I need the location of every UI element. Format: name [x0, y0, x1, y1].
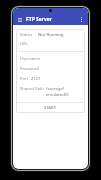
button[interactable]: More options — [78, 16, 85, 23]
staticText: /storage/emulated/0 — [46, 86, 81, 98]
staticText: Shared Path — [20, 86, 44, 92]
staticText: Not Running — [38, 32, 64, 38]
staticText: Password — [20, 66, 39, 72]
staticText: Username — [20, 56, 41, 62]
staticText: START — [44, 105, 57, 111]
staticText: Status — [20, 32, 33, 38]
button[interactable]: START — [16, 103, 85, 113]
staticText: FTP Server — [26, 16, 53, 23]
staticText: URL — [20, 41, 28, 47]
staticText: 2121 — [31, 76, 41, 82]
button[interactable]: Open navigation menu — [16, 16, 23, 23]
staticText: Port — [20, 76, 29, 82]
